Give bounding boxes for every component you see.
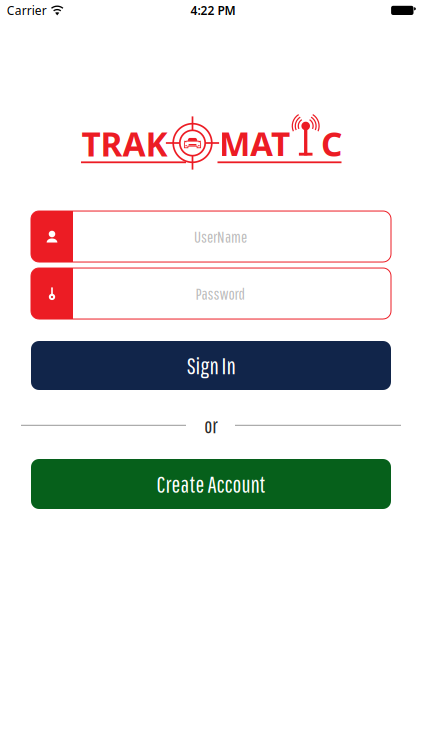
staticText: Sign In	[186, 352, 235, 379]
staticText: Password	[195, 284, 245, 303]
button[interactable]: UserName	[31, 211, 391, 262]
button[interactable]: Sign In	[31, 341, 391, 390]
staticText: UserName	[194, 227, 247, 246]
staticText: or	[204, 413, 218, 438]
staticText: MAT	[219, 121, 290, 166]
staticText: Carrier	[7, 2, 47, 18]
staticText: C	[321, 121, 342, 166]
button[interactable]: Create Account	[31, 459, 391, 509]
staticText: Create Account	[156, 471, 265, 497]
staticText: TRAK	[81, 121, 167, 166]
staticText: 4:22 PM	[190, 2, 235, 18]
button[interactable]: Password	[31, 268, 391, 319]
